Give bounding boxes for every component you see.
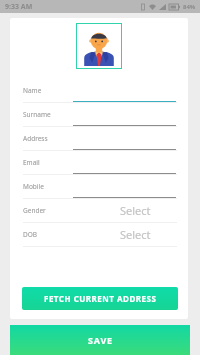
button[interactable]: Change profile photo bbox=[77, 24, 121, 68]
button[interactable]: Address bbox=[10, 127, 188, 151]
staticText: SAVE bbox=[88, 334, 113, 346]
button[interactable]: Surname bbox=[10, 103, 188, 127]
staticText: Select bbox=[120, 227, 151, 242]
staticText: Surname bbox=[23, 110, 51, 119]
button[interactable]: SAVE bbox=[10, 325, 190, 355]
staticText: DOB bbox=[23, 230, 38, 239]
button[interactable]: FETCH CURRENT ADDRESS bbox=[22, 287, 178, 310]
staticText: Address bbox=[23, 134, 48, 143]
staticText: 9:33 AM bbox=[5, 2, 33, 12]
staticText: Gender bbox=[23, 206, 46, 215]
staticText: Email bbox=[23, 158, 40, 167]
staticText: Select bbox=[120, 203, 151, 218]
button[interactable]: Email bbox=[10, 151, 188, 175]
button[interactable]: Mobile bbox=[10, 175, 188, 199]
button[interactable]: Gender bbox=[10, 199, 188, 223]
button[interactable]: Name bbox=[10, 79, 188, 103]
staticText: 84% bbox=[183, 3, 196, 11]
staticText: Name bbox=[23, 86, 42, 95]
button[interactable]: DOB bbox=[10, 223, 188, 247]
staticText: FETCH CURRENT ADDRESS bbox=[44, 293, 157, 304]
staticText: Mobile bbox=[23, 182, 44, 191]
